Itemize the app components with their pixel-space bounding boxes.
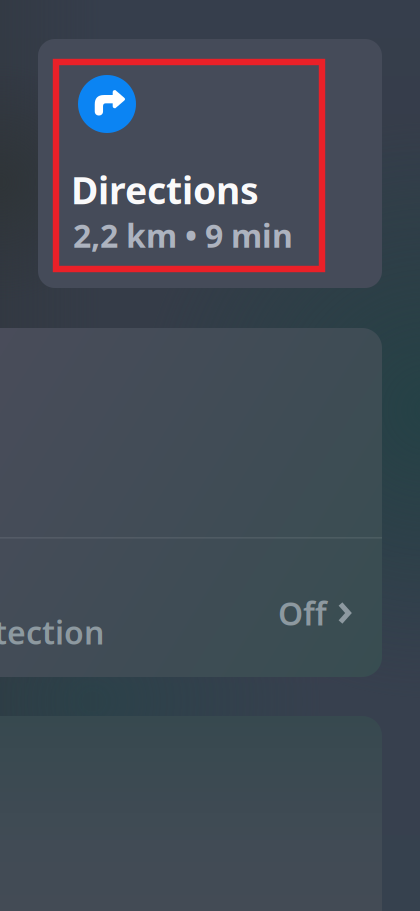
staticText: Directions bbox=[71, 165, 259, 215]
button[interactable]: Off bbox=[251, 572, 351, 654]
staticText: Off bbox=[278, 592, 327, 634]
button[interactable]: Crash Detection bbox=[0, 591, 156, 673]
button[interactable]: Directions bbox=[38, 39, 382, 288]
staticText: Crash Detection bbox=[0, 611, 104, 653]
staticText: 2,2 km • 9 min bbox=[73, 214, 293, 256]
